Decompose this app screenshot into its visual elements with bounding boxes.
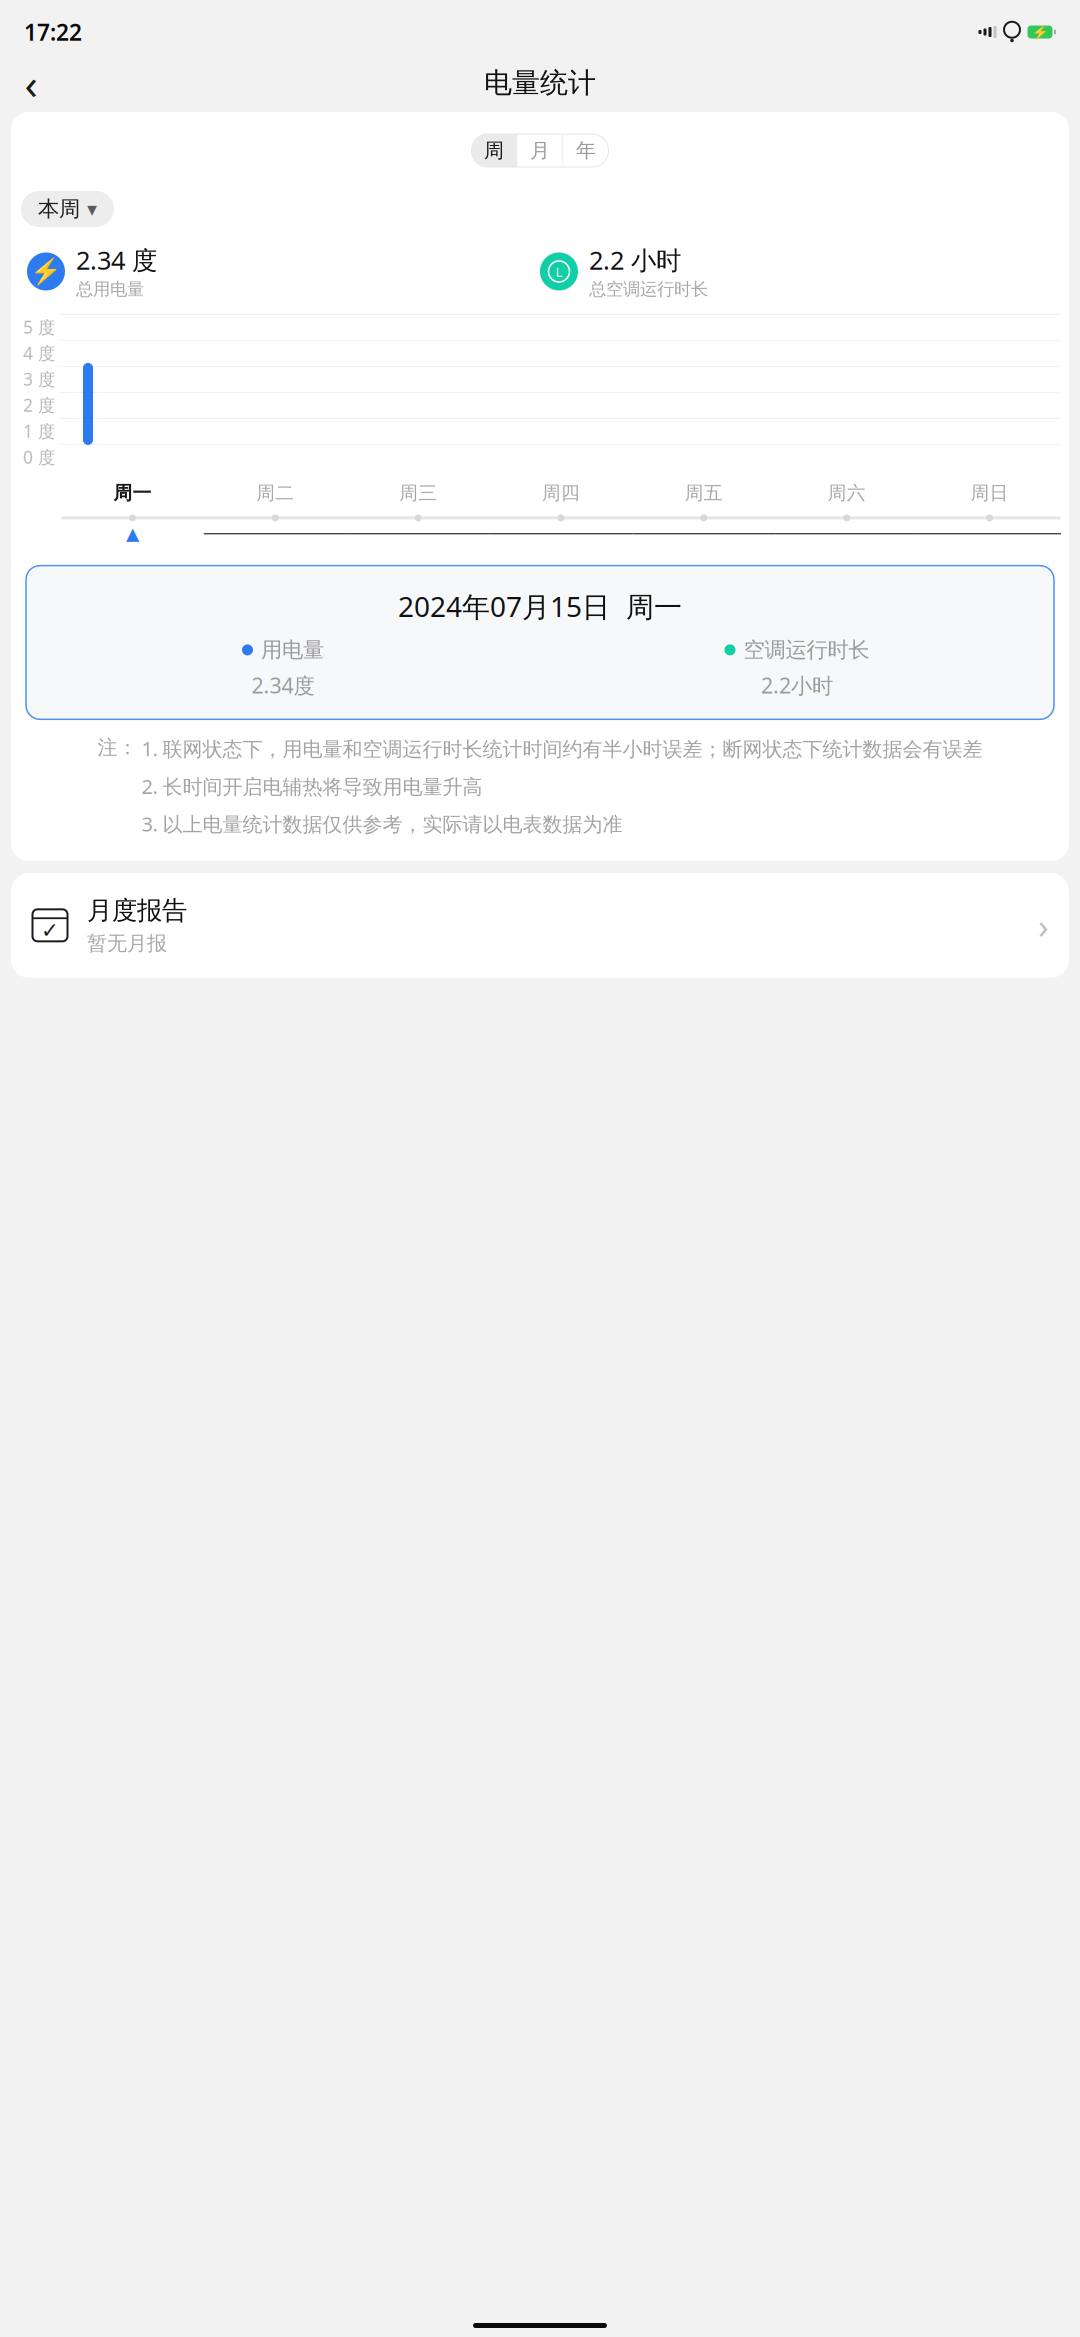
- staticText: 周三: [399, 481, 437, 504]
- button[interactable]: ✓: [11, 873, 1069, 978]
- staticText: 用电量: [261, 637, 324, 663]
- staticText: 2.2小时: [761, 671, 833, 699]
- staticText: ›: [1038, 902, 1049, 948]
- staticText: 1 度: [23, 419, 55, 442]
- staticText: 2024年07月15日 周一: [398, 588, 682, 625]
- staticText: 5 度: [23, 315, 55, 338]
- button[interactable]: 周四: [490, 480, 632, 506]
- button[interactable]: 周日: [918, 480, 1061, 506]
- staticText: 空调运行时长: [743, 637, 869, 663]
- staticText: ⚡: [30, 257, 62, 286]
- button[interactable]: 周一: [61, 480, 204, 506]
- staticText: 2 度: [23, 393, 55, 416]
- staticText: 周四: [542, 481, 580, 504]
- staticText: ‹: [24, 55, 37, 111]
- button[interactable]: 周二: [204, 480, 347, 506]
- staticText: 3. 以上电量统计数据仅供参考，实际请以电表数据为准: [141, 810, 622, 837]
- staticText: 周六: [828, 481, 866, 504]
- staticText: 电量统计: [484, 66, 596, 100]
- staticText: 周二: [256, 481, 294, 504]
- staticText: 总空调运行时长: [589, 279, 708, 300]
- staticText: ⚡: [1031, 24, 1048, 40]
- staticText: 周五: [685, 481, 723, 504]
- staticText: 0 度: [23, 445, 55, 468]
- staticText: 本周: [38, 196, 80, 222]
- staticText: 2.2 小时: [589, 243, 681, 277]
- staticText: ✓: [41, 918, 59, 942]
- staticText: 3 度: [23, 367, 55, 390]
- staticText: 17:22: [24, 17, 82, 47]
- staticText: ▾: [87, 198, 97, 220]
- button[interactable]: 周五: [632, 480, 775, 506]
- staticText: 周一: [113, 481, 151, 504]
- button[interactable]: 月: [517, 134, 562, 167]
- staticText: 4 度: [23, 341, 55, 364]
- staticText: 周日: [971, 481, 1009, 504]
- staticText: 暂无月报: [87, 931, 167, 956]
- staticText: 2. 长时间开启电辅热将导致用电量升高: [141, 773, 482, 799]
- staticText: 周: [484, 138, 504, 163]
- staticText: 月度报告: [87, 895, 187, 926]
- button[interactable]: 返回: [8, 60, 54, 106]
- staticText: 年: [576, 138, 596, 163]
- button[interactable]: 本周: [21, 191, 114, 227]
- button[interactable]: 周三: [347, 480, 490, 506]
- staticText: 月: [530, 138, 550, 163]
- staticText: 2.34 度: [76, 243, 157, 277]
- staticText: ▲: [126, 524, 139, 544]
- staticText: 2.34度: [251, 671, 314, 699]
- staticText: L: [555, 263, 562, 280]
- button[interactable]: 周: [471, 134, 516, 167]
- staticText: 总用电量: [76, 279, 144, 300]
- button[interactable]: 周六: [775, 480, 918, 506]
- button[interactable]: 年: [563, 134, 608, 167]
- staticText: 注：: [97, 735, 137, 760]
- staticText: 1. 联网状态下，用电量和空调运行时长统计时间约有半小时误差；断网状态下统计数据…: [141, 735, 982, 762]
